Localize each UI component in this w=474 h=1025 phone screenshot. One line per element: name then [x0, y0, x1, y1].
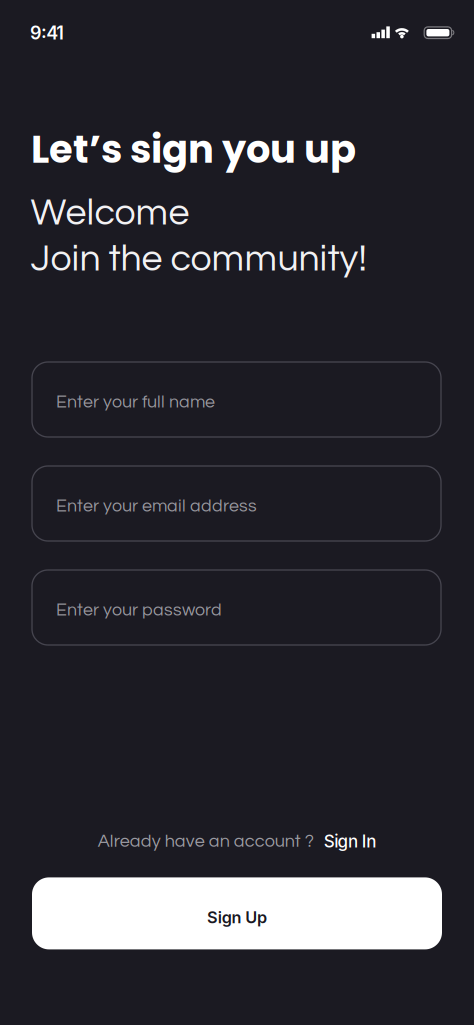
button[interactable]: Enter your password	[32, 570, 441, 645]
button[interactable]: Sign Up	[32, 877, 442, 949]
button[interactable]: Enter your email address	[32, 466, 441, 541]
staticText: Join the community!	[30, 240, 366, 278]
staticText: Enter your email address	[56, 497, 257, 515]
staticText: 9:41	[30, 22, 64, 44]
staticText: Enter your full name	[56, 393, 215, 411]
button[interactable]: Enter your full name	[32, 362, 441, 437]
staticText: Sign Up	[207, 908, 267, 927]
staticText: Sign In	[324, 831, 376, 852]
staticText: Already have an account ?	[98, 832, 314, 850]
staticText: Welcome	[30, 194, 189, 232]
staticText: Enter your password	[56, 601, 222, 619]
staticText: Let’s sign you up	[31, 122, 356, 176]
button[interactable]: Sign In	[324, 831, 376, 852]
